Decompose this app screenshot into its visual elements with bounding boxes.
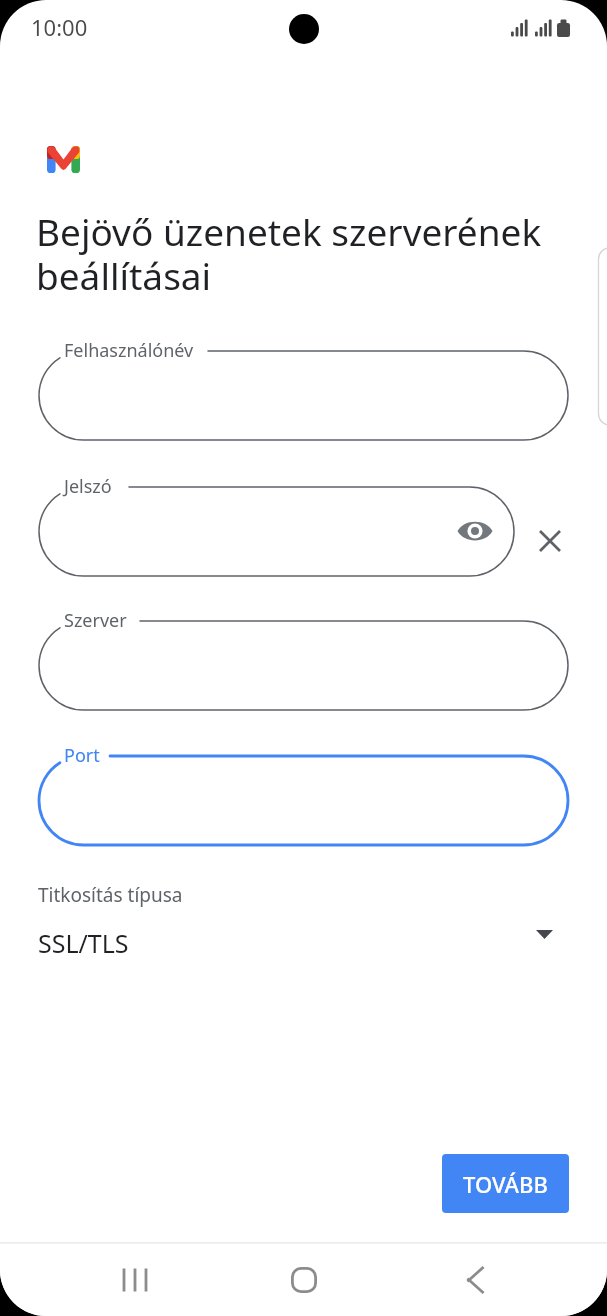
button[interactable]: Home [270, 1246, 338, 1314]
staticText: Felhasználónév [64, 338, 194, 363]
staticText: Port [64, 743, 100, 768]
button[interactable]: Recent apps [101, 1246, 169, 1314]
button[interactable]: Szerver [39, 621, 568, 710]
staticText: Jelszó [64, 474, 112, 499]
button[interactable]: SSL/TLS [20, 914, 587, 974]
button[interactable]: Port [39, 756, 568, 845]
staticText: Bejövő üzenetek szerverének beállításai [36, 206, 606, 301]
staticText: SSL/TLS [38, 926, 129, 960]
button[interactable]: Felhasználónév [39, 351, 568, 440]
staticText: 10:00 [31, 12, 88, 42]
button[interactable]: Clear password [526, 517, 574, 565]
staticText: Szerver [64, 608, 127, 633]
staticText: TOVÁBB [463, 1169, 548, 1199]
button[interactable]: Show password [451, 507, 499, 555]
button[interactable]: Jelszó [39, 487, 514, 576]
staticText: Titkosítás típusa [38, 882, 183, 908]
button[interactable]: Back [441, 1246, 509, 1314]
button[interactable]: TOVÁBB [442, 1154, 569, 1213]
